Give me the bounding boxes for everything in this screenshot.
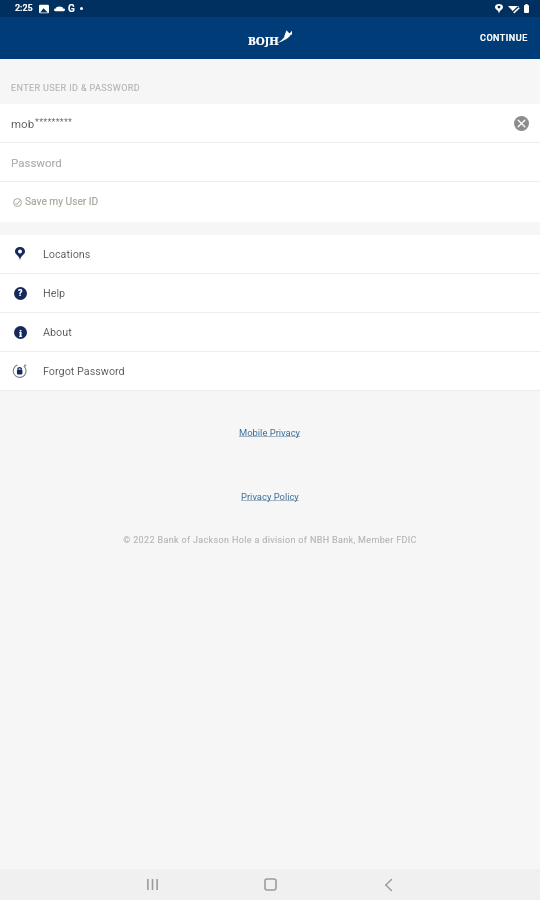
button[interactable]: Mobile Privacy	[233, 424, 307, 441]
staticText: *********	[35, 117, 73, 128]
button[interactable]: Back	[349, 869, 427, 900]
staticText: ENTER USER ID & PASSWORD	[11, 83, 141, 94]
staticText: G	[68, 3, 75, 15]
button[interactable]: ?	[0, 274, 540, 312]
staticText: 2:25	[15, 3, 33, 14]
button[interactable]: CONTINUE	[468, 22, 540, 55]
staticText: Forgot Password	[43, 365, 125, 378]
staticText: Password	[11, 156, 62, 169]
staticText: Locations	[43, 248, 91, 261]
button[interactable]: Locations	[0, 235, 540, 273]
button[interactable]: Recents	[113, 869, 191, 900]
staticText: Privacy Policy	[241, 491, 299, 502]
button[interactable]: Save my User ID	[0, 182, 540, 222]
staticText: ?	[18, 288, 23, 299]
staticText: BOJH	[248, 33, 279, 49]
button[interactable]: Home	[231, 869, 309, 900]
staticText: © 2022 Bank of Jackson Hole a division o…	[0, 535, 540, 546]
button[interactable]: Forgot Password	[0, 352, 540, 390]
staticText: Mobile Privacy	[239, 427, 301, 438]
staticText: Help	[43, 287, 66, 300]
staticText: mob	[11, 117, 35, 130]
button[interactable]: Clear user ID	[513, 115, 530, 132]
button[interactable]: i	[0, 313, 540, 351]
staticText: About	[43, 326, 72, 339]
staticText: i	[19, 327, 23, 339]
staticText: CONTINUE	[480, 33, 528, 44]
staticText: Save my User ID	[25, 196, 99, 208]
button[interactable]: Privacy Policy	[235, 488, 305, 505]
